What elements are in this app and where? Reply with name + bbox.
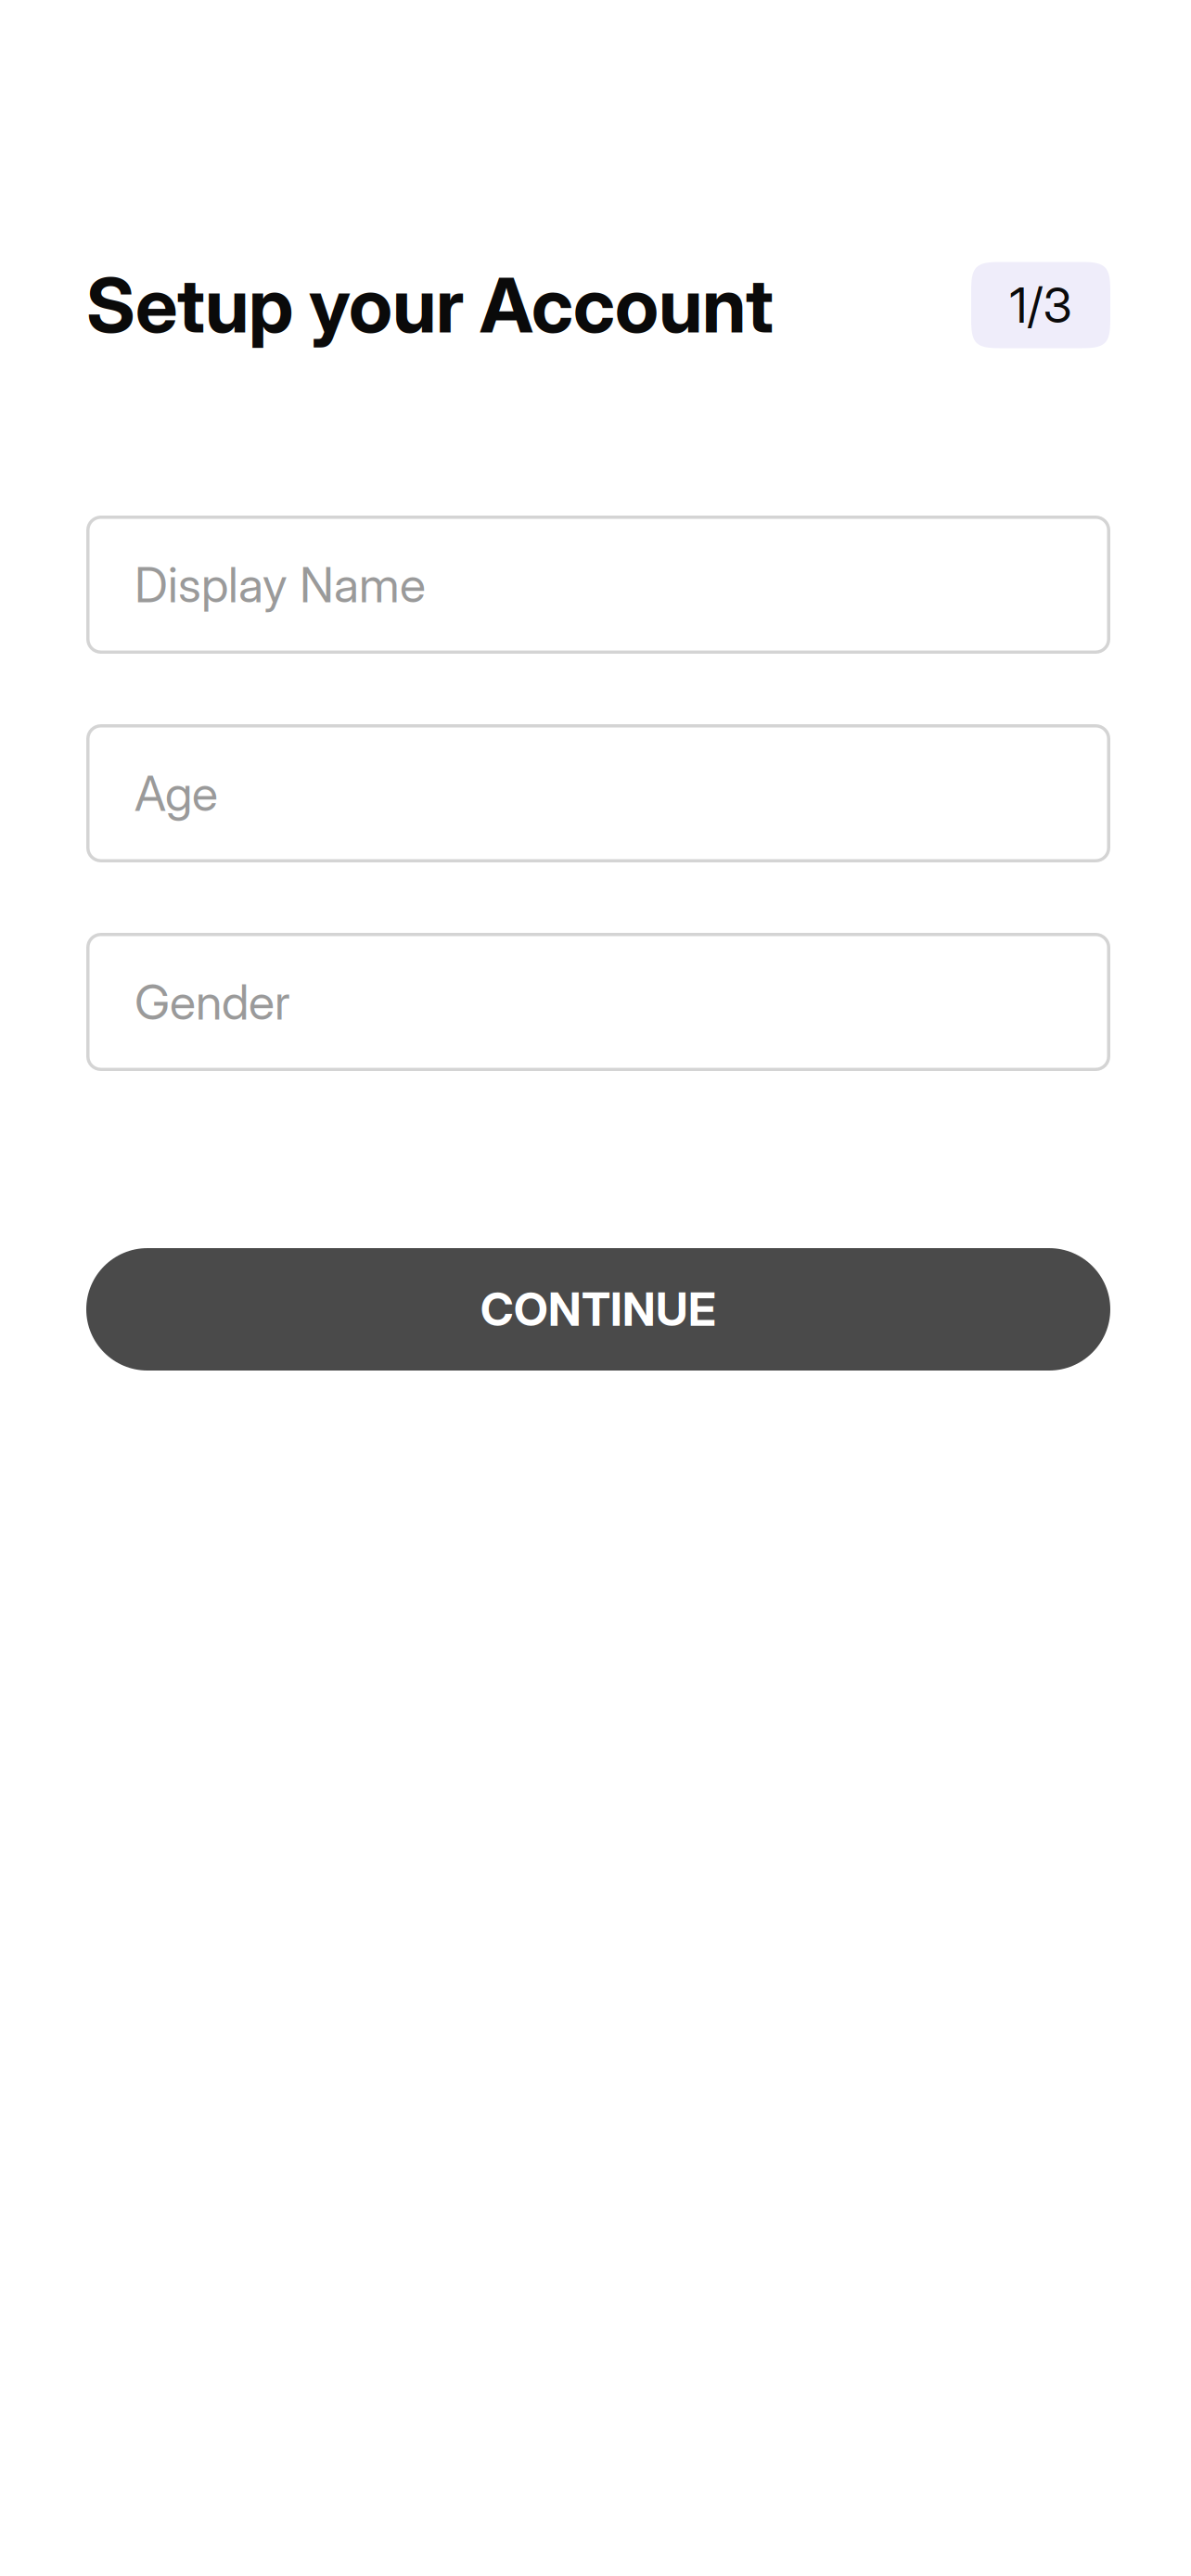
staticText: CONTINUE [480, 1282, 716, 1337]
staticText: Age [134, 764, 218, 822]
button[interactable]: Display Name [86, 516, 1110, 654]
button[interactable]: Step 1 of 3 [971, 262, 1110, 348]
staticText: 1/3 [1010, 276, 1072, 334]
staticText: Gender [134, 973, 290, 1031]
button[interactable]: Age [86, 724, 1110, 862]
staticText: Setup your Account [86, 260, 774, 351]
staticText: Display Name [134, 555, 426, 614]
button[interactable]: CONTINUE [86, 1248, 1110, 1371]
button[interactable]: Gender [86, 933, 1110, 1071]
